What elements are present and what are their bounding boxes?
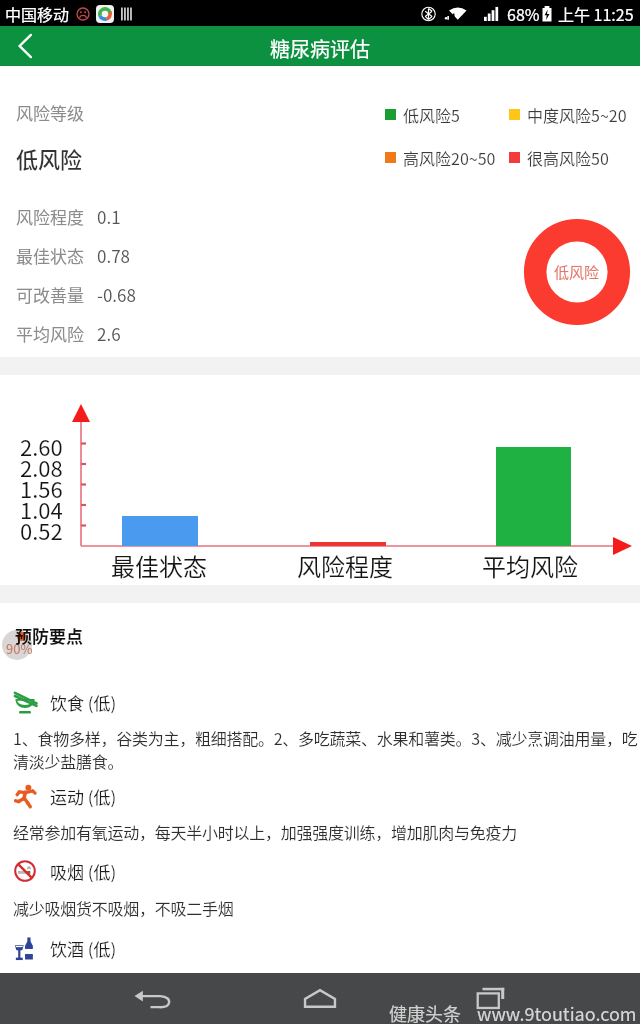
staticText: www.9toutiao.com xyxy=(477,1000,637,1024)
staticText: 中国移动 xyxy=(5,2,70,25)
staticText: 上午 11:25 xyxy=(558,2,634,25)
staticText: 吸烟 (低) xyxy=(50,859,117,884)
staticText: 1.56 xyxy=(20,472,63,504)
staticText: 经常参加有氧运动，每天半小时以上，加强强度训练，增加肌肉与免疫力 xyxy=(13,820,640,843)
button[interactable]: Back xyxy=(128,975,176,1023)
staticText: 平均风险 xyxy=(16,321,84,346)
staticText: -0.68 xyxy=(97,282,136,307)
button[interactable]: 饮酒 (低) xyxy=(0,935,640,961)
button[interactable]: Recents xyxy=(470,977,514,1021)
button[interactable]: Home xyxy=(296,975,344,1023)
staticText: 2.08 xyxy=(20,451,63,483)
staticText: 0.52 xyxy=(20,514,63,546)
staticText: 2.60 xyxy=(20,430,63,462)
staticText: 平均风险 xyxy=(482,548,578,583)
staticText: 很高风险50 xyxy=(527,146,609,169)
staticText: 最佳状态 xyxy=(16,243,84,268)
staticText: 高风险20~50 xyxy=(403,146,496,169)
staticText: 饮食 (低) xyxy=(50,690,117,715)
staticText: 健康头条 xyxy=(389,1000,461,1024)
staticText: 0.78 xyxy=(97,243,131,268)
staticText: 风险程度 xyxy=(16,204,84,229)
staticText: 0.1 xyxy=(97,204,121,229)
staticText: 低风险 xyxy=(16,142,83,174)
staticText: 2.6 xyxy=(97,321,121,346)
staticText: 低风险5 xyxy=(403,103,460,126)
staticText: 1、食物多样，谷类为主，粗细搭配。2、多吃蔬菜、水果和薯类。3、减少烹调油用量，… xyxy=(13,726,640,773)
staticText: 糖尿病评估 xyxy=(270,34,370,63)
staticText: 中度风险5~20 xyxy=(527,103,627,126)
staticText: 减少吸烟货不吸烟，不吸二手烟 xyxy=(13,896,640,919)
staticText: 风险等级 xyxy=(16,100,84,125)
staticText: 预防要点 xyxy=(15,623,83,648)
staticText: 90% xyxy=(6,639,33,658)
button[interactable]: 运动 (低) xyxy=(0,783,640,809)
staticText: 风险程度 xyxy=(297,548,393,583)
button[interactable]: 吸烟 (低) xyxy=(0,858,640,884)
staticText: 运动 (低) xyxy=(50,784,117,809)
button[interactable]: 饮食 (低) xyxy=(0,689,640,715)
button[interactable]: Back xyxy=(0,26,44,66)
staticText: 可改善量 xyxy=(16,282,84,307)
staticText: 68% xyxy=(507,2,540,25)
staticText: 最佳状态 xyxy=(111,548,207,583)
staticText: 1.04 xyxy=(20,493,63,525)
staticText: 饮酒 (低) xyxy=(50,936,117,961)
staticText: 低风险 xyxy=(554,261,600,283)
